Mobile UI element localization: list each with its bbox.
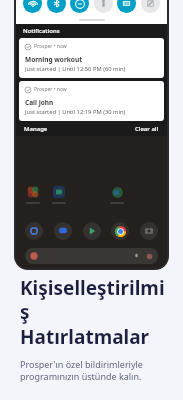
button[interactable]: Quick setting <box>94 0 113 13</box>
button[interactable]: App <box>111 222 129 240</box>
staticText: Hatırlatmalar <box>20 324 150 350</box>
button[interactable]: Manage <box>24 125 48 133</box>
staticText: Call John <box>25 98 54 107</box>
button[interactable]: App <box>140 222 158 240</box>
button[interactable]: Quick setting <box>141 0 160 13</box>
staticText: programınızın üstünde kalın. <box>20 370 142 382</box>
staticText: Prosper'ın özel bildirimleriyle <box>20 358 143 370</box>
button[interactable]: App <box>54 222 72 240</box>
button[interactable]: Quick setting <box>117 0 136 13</box>
staticText: Prosper • now <box>34 86 67 93</box>
button[interactable]: Google search <box>25 248 158 264</box>
button[interactable]: Quick setting <box>23 0 42 13</box>
staticText: Manage <box>24 125 48 133</box>
staticText: Just started | Until 12:50 PM (60 min) <box>25 65 126 73</box>
button[interactable]: App <box>25 222 43 240</box>
staticText: Clear all <box>135 125 159 133</box>
button[interactable]: App <box>51 184 67 200</box>
staticText: Morning workout <box>25 55 82 64</box>
button[interactable]: Quick setting <box>47 0 66 13</box>
staticText: Prosper • now <box>34 43 67 50</box>
button[interactable]: Clear all <box>135 125 159 133</box>
button[interactable]: Prosper • now <box>19 38 164 78</box>
button[interactable]: App <box>109 184 125 200</box>
staticText: Notifications <box>23 27 60 35</box>
staticText: Just started | Until 12:19 PM (30 min) <box>25 108 126 116</box>
button[interactable]: Quick setting <box>70 0 89 13</box>
button[interactable]: App <box>83 222 101 240</box>
staticText: Kişiselleştirilmiş <box>20 275 169 324</box>
button[interactable]: App <box>25 184 41 200</box>
button[interactable]: Prosper • now <box>19 81 164 121</box>
